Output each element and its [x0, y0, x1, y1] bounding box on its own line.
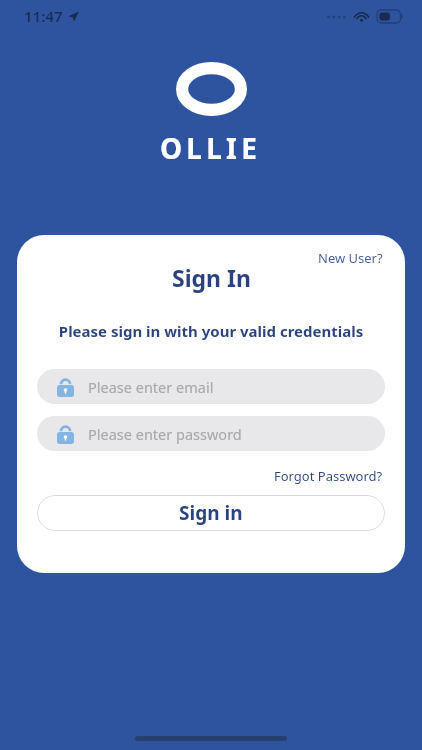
button[interactable]: Please enter email — [37, 369, 385, 404]
button[interactable]: Please enter password — [37, 416, 385, 451]
staticText: OLLIE — [160, 129, 262, 167]
staticText: Please enter email — [88, 377, 214, 397]
button[interactable]: Forgot Password? — [272, 465, 385, 487]
staticText: New User? — [318, 249, 383, 267]
staticText: Forgot Password? — [274, 467, 383, 485]
staticText: Please sign in with your valid credentia… — [37, 321, 385, 341]
button[interactable]: New User? — [316, 247, 385, 269]
button[interactable]: Sign in — [37, 495, 385, 531]
staticText: Please enter password — [88, 424, 242, 444]
staticText: 11:47 — [24, 6, 63, 26]
staticText: Sign in — [179, 500, 243, 526]
staticText: Sign In — [172, 262, 251, 293]
